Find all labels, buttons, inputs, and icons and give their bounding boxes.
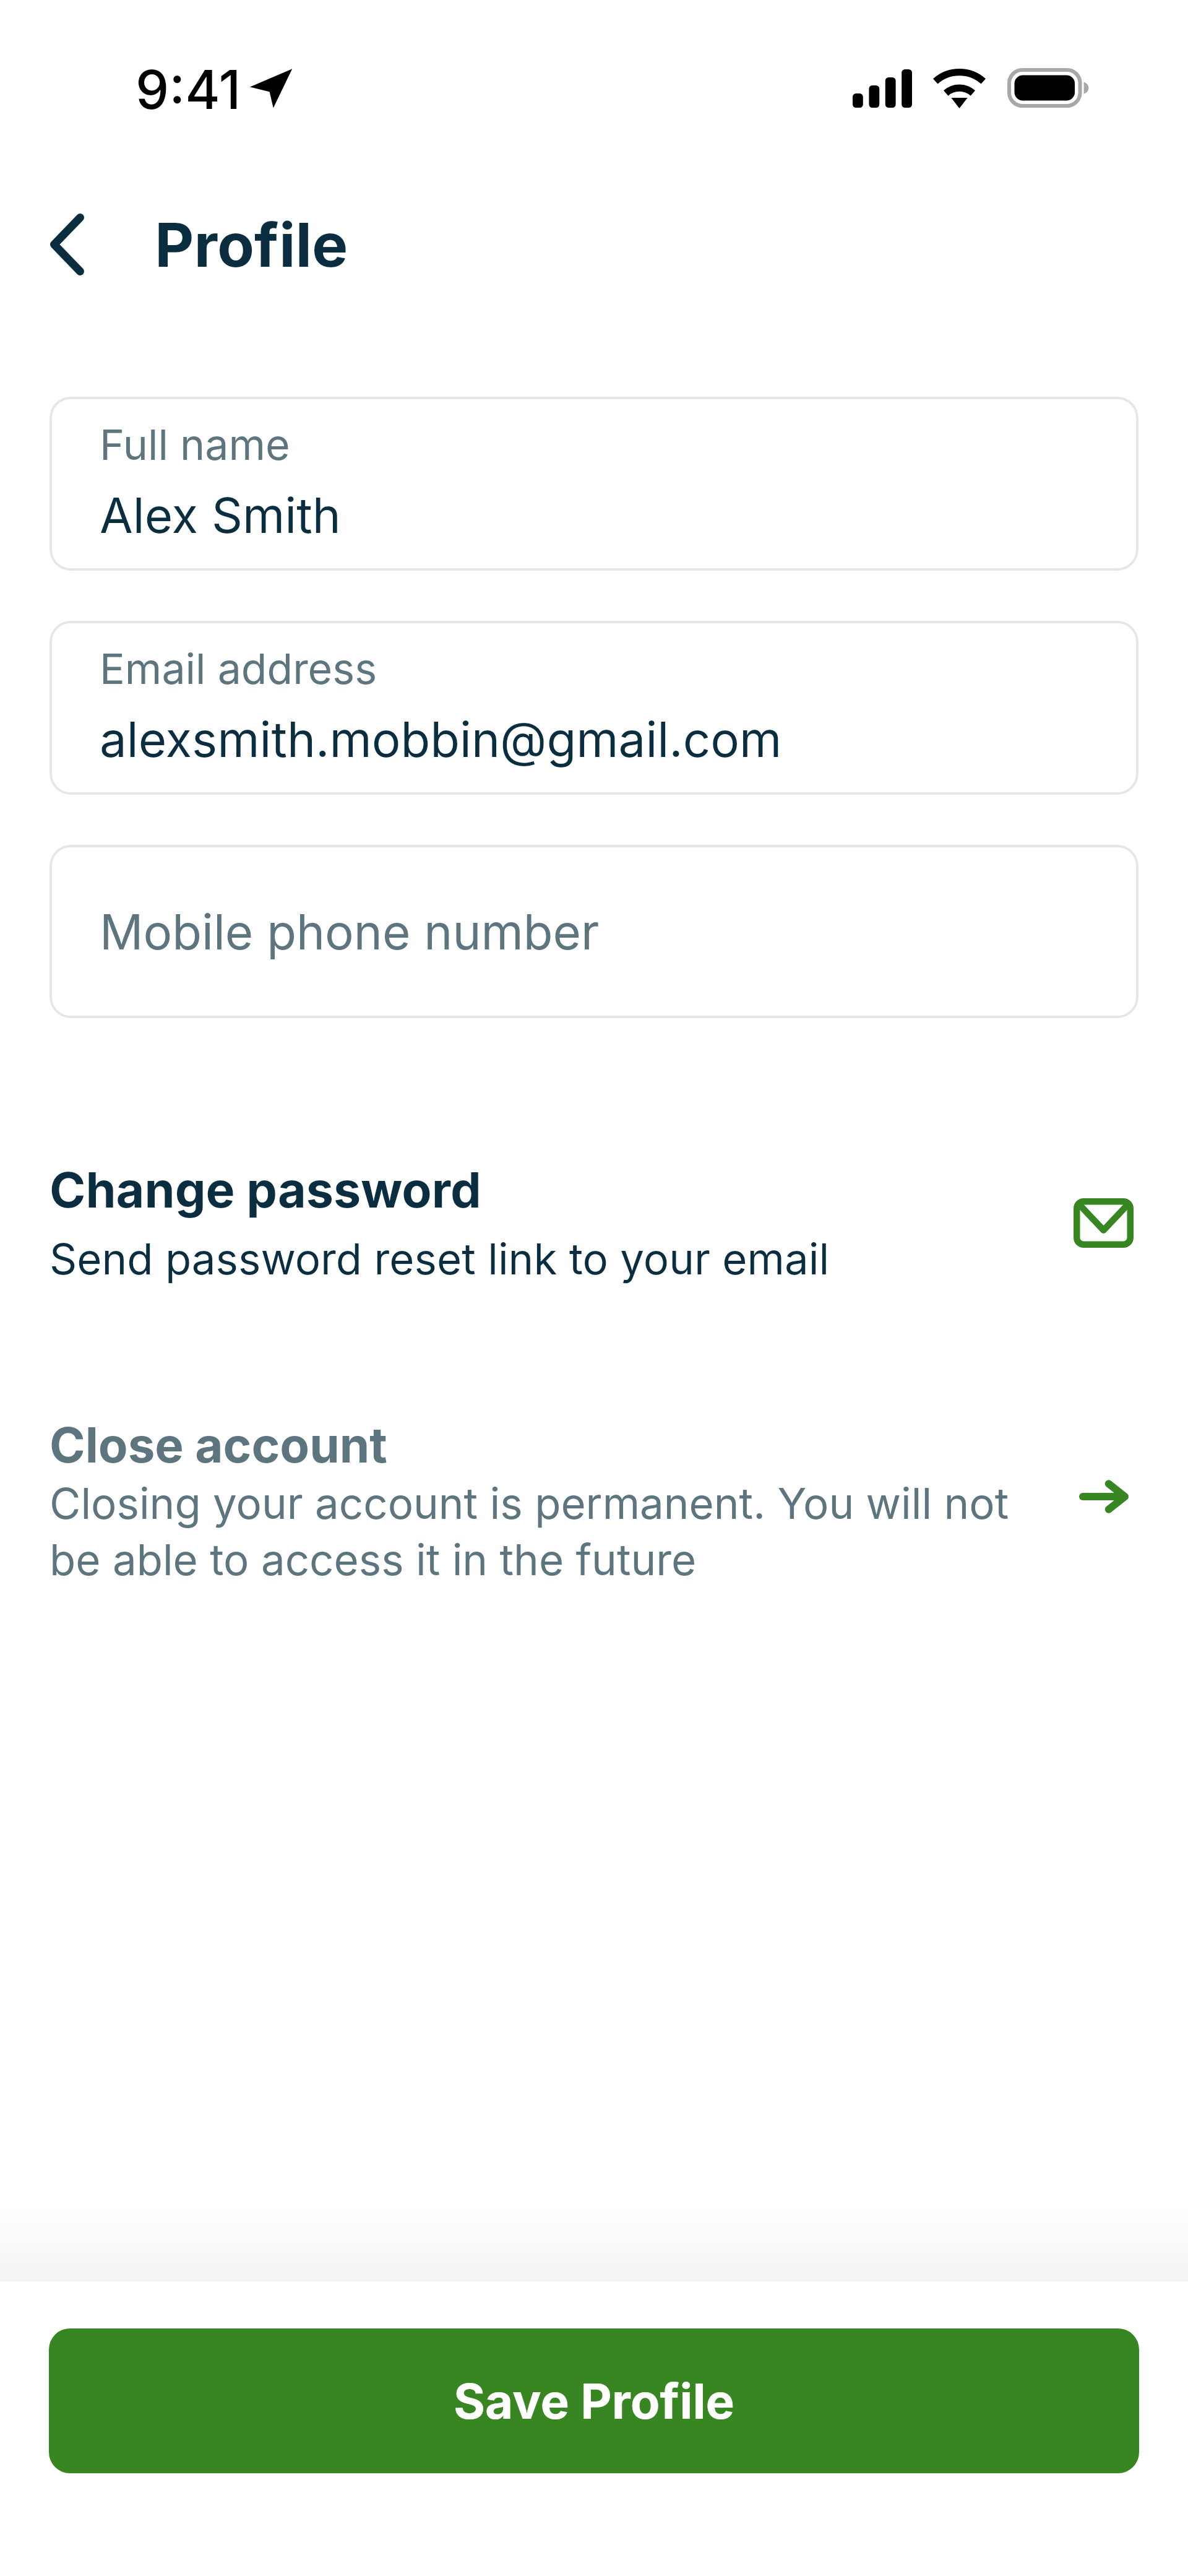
staticText: Change password <box>49 1160 481 1219</box>
other: Send password reset email <box>1074 1198 1134 1248</box>
staticText: Mobile phone number <box>100 902 600 961</box>
button[interactable]: Back <box>19 186 115 303</box>
staticText: Save Profile <box>454 2372 734 2430</box>
staticText: Full name <box>100 419 290 470</box>
staticText: alexsmith.mobbin@gmail.com <box>100 710 782 768</box>
button[interactable]: Mobile phone number <box>49 845 1138 1018</box>
staticText: Profile <box>155 208 348 282</box>
button[interactable]: Save Profile <box>49 2328 1139 2473</box>
button[interactable]: Change password <box>49 1143 1138 1316</box>
other: Close account <box>1079 1480 1129 1513</box>
staticText: Email address <box>100 643 377 694</box>
button[interactable]: Email address <box>49 621 1138 795</box>
staticText: Close account <box>49 1416 387 1474</box>
staticText: Alex Smith <box>100 486 341 544</box>
staticText: Send password reset link to your email <box>49 1233 830 1284</box>
button[interactable]: Full name <box>49 397 1138 571</box>
staticText: 9:41 <box>136 58 241 122</box>
button[interactable]: Close account <box>49 1399 1138 1622</box>
staticText: Closing your account is permanent. You w… <box>49 1477 1021 1586</box>
